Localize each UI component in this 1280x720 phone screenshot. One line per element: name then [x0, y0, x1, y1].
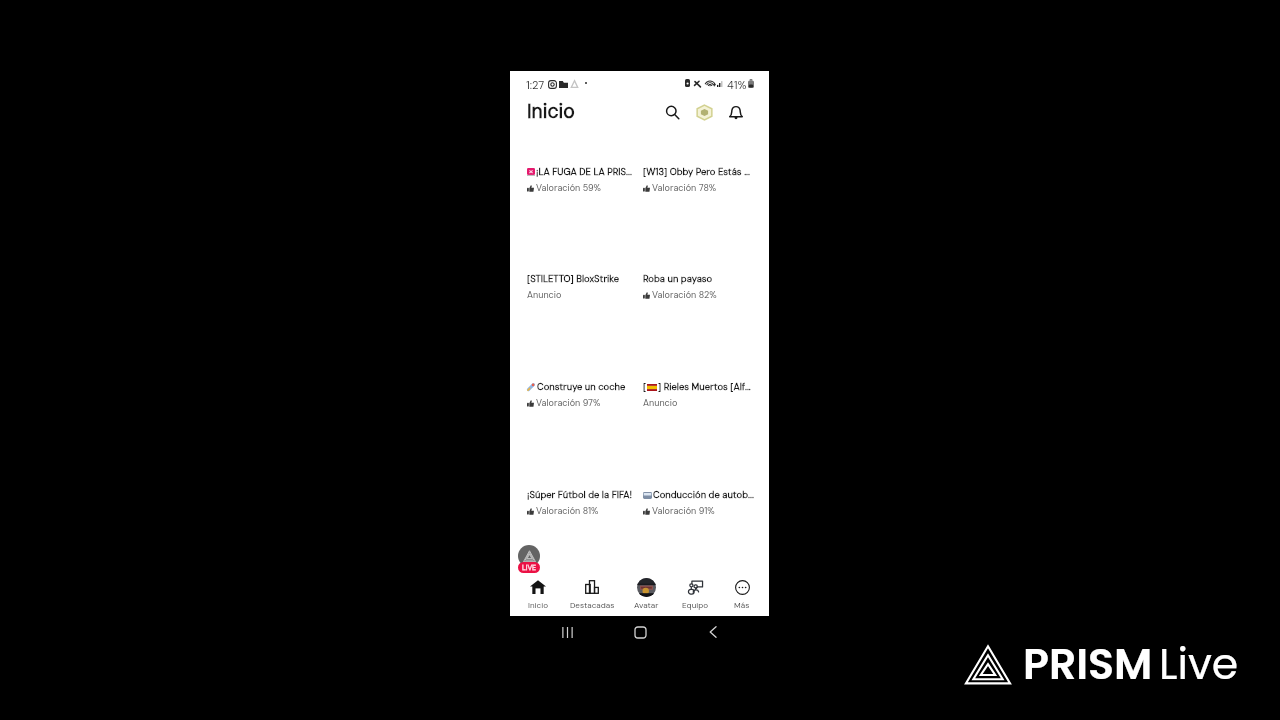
staticText: [ — [643, 381, 647, 393]
staticText: Valoración 97% — [536, 397, 601, 409]
staticText: Destacadas — [570, 600, 615, 611]
staticText: PRISM — [1023, 634, 1153, 694]
button[interactable]: [STILETTO] BloxStrike — [527, 273, 633, 307]
staticText: Anuncio — [643, 397, 678, 409]
button[interactable]: Search — [659, 99, 685, 125]
button[interactable]: Destacadas — [565, 573, 619, 616]
staticText: Inicio — [528, 600, 549, 611]
staticText: [W13] Obby Pero Estás ... — [643, 166, 750, 178]
button[interactable]: Back — [702, 621, 724, 643]
button[interactable]: Construye un coche — [527, 381, 633, 415]
button[interactable]: Robux — [691, 99, 717, 125]
button[interactable]: Recent apps — [556, 621, 578, 643]
staticText: Equipo — [682, 600, 709, 611]
staticText: Roba un payaso — [643, 273, 713, 285]
staticText: Avatar — [634, 600, 659, 611]
staticText: Conducción de autob... — [653, 489, 754, 501]
staticText: Valoración 91% — [652, 505, 715, 517]
button[interactable]: [ — [643, 381, 755, 415]
staticText: Valoración 78% — [652, 182, 717, 194]
staticText: ] Rieles Muertos [Alf... — [658, 381, 751, 393]
button[interactable]: Avatar — [619, 573, 673, 616]
staticText: LIVE — [522, 563, 537, 572]
button[interactable]: Conducción de autob... — [643, 489, 755, 523]
staticText: Valoración 82% — [652, 289, 717, 301]
staticText: Más — [734, 600, 750, 611]
staticText: 41% — [727, 78, 747, 92]
button[interactable]: ¡Súper Fútbol de la FIFA! — [527, 489, 633, 523]
staticText: Valoración 81% — [536, 505, 599, 517]
button[interactable]: Notifications — [723, 99, 749, 125]
button[interactable]: Equipo — [668, 573, 722, 616]
staticText: Inicio — [527, 99, 575, 124]
staticText: Construye un coche — [537, 381, 626, 393]
staticText: ¡LA FUGA DE LA PRIS... — [536, 166, 632, 178]
staticText: ¡Súper Fútbol de la FIFA! — [527, 489, 633, 501]
staticText: [STILETTO] BloxStrike — [527, 273, 620, 285]
button[interactable]: Home — [629, 621, 651, 643]
button[interactable]: [W13] Obby Pero Estás ... — [643, 166, 755, 200]
button[interactable]: Roba un payaso — [643, 273, 755, 307]
staticText: Live — [1159, 634, 1239, 694]
button[interactable]: Inicio — [511, 573, 565, 616]
button[interactable]: Más — [715, 573, 769, 616]
staticText: Valoración 59% — [536, 182, 601, 194]
staticText: 1:27 — [526, 78, 545, 92]
staticText: Anuncio — [527, 289, 562, 301]
button[interactable]: ¡LA FUGA DE LA PRIS... — [527, 166, 633, 200]
